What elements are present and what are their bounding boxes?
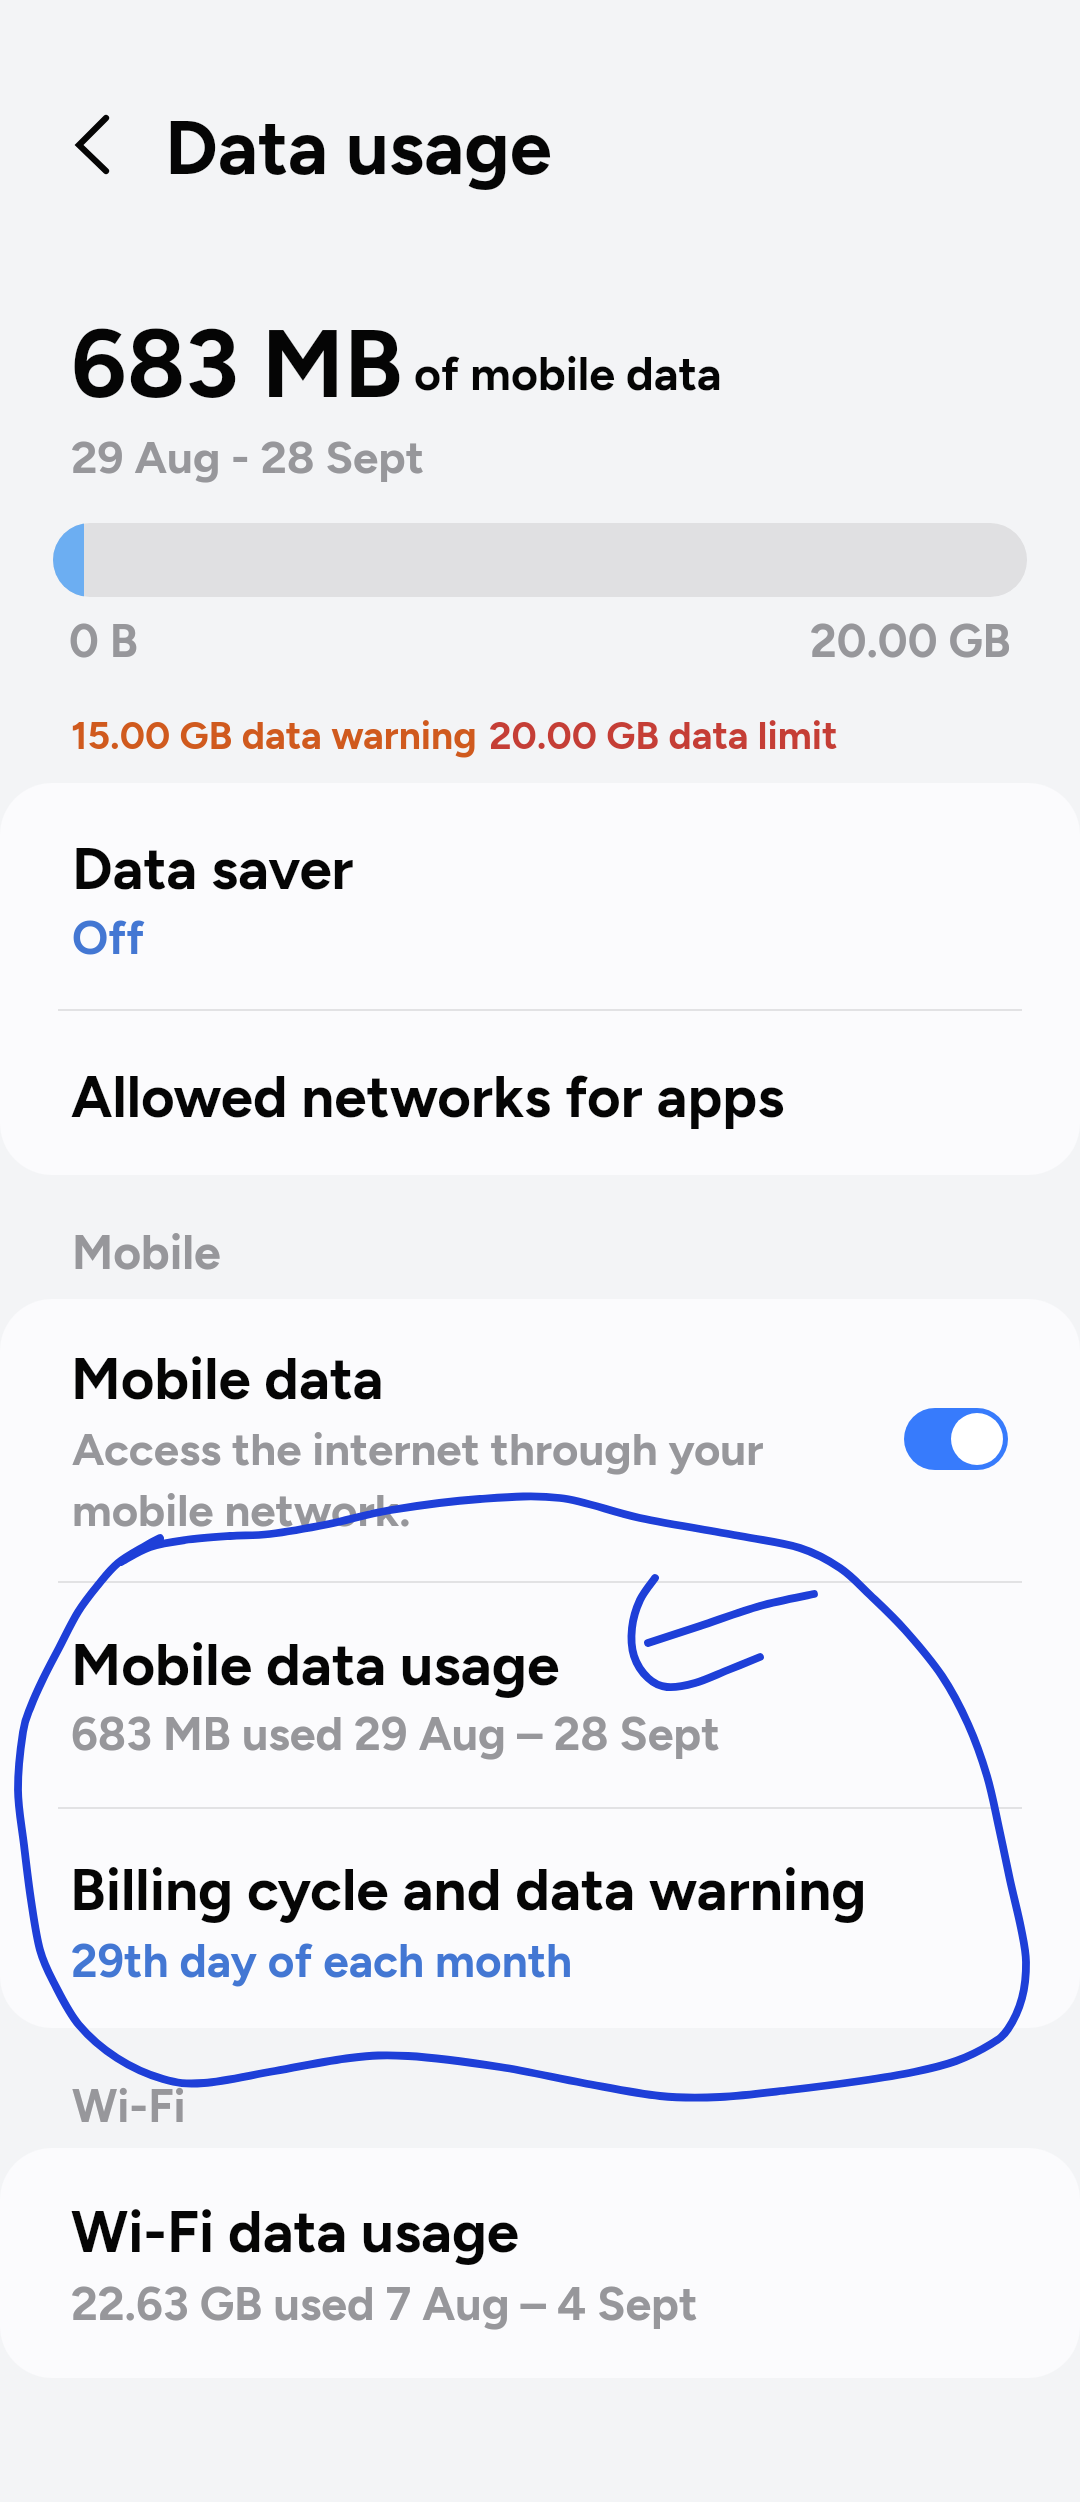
staticText: Access the internet through your mobile … bbox=[72, 1422, 764, 1537]
button[interactable]: Mobile data usage bbox=[0, 1583, 1080, 1806]
staticText: Data saver bbox=[72, 834, 354, 904]
staticText: Off bbox=[72, 910, 145, 965]
staticText: 20.00 GB bbox=[810, 613, 1011, 668]
staticText: of mobile data bbox=[414, 346, 722, 402]
staticText: 20.00 GB data limit bbox=[489, 712, 838, 759]
button[interactable]: Wi-Fi data usage bbox=[0, 2148, 1080, 2378]
staticText: 22.63 GB used 7 Aug – 4 Sept bbox=[71, 2276, 698, 2332]
staticText: Mobile data usage bbox=[71, 1629, 560, 1699]
staticText: Wi-Fi data usage bbox=[71, 2197, 519, 2267]
staticText: 683 MB bbox=[71, 306, 403, 421]
button[interactable]: Allowed networks for apps bbox=[0, 1011, 1080, 1175]
button[interactable]: Data saver bbox=[0, 783, 1080, 1009]
staticText: 0 B bbox=[69, 613, 138, 668]
staticText: Billing cycle and data warning bbox=[70, 1855, 867, 1925]
staticText: Wi-Fi bbox=[72, 2078, 186, 2133]
staticText: 29th day of each month bbox=[71, 1933, 573, 1988]
button[interactable]: Billing cycle and data warning bbox=[0, 1809, 1080, 2028]
staticText: 683 MB used 29 Aug – 28 Sept bbox=[71, 1706, 720, 1762]
button[interactable]: Mobile data bbox=[0, 1299, 1080, 1580]
staticText: Mobile data bbox=[71, 1344, 384, 1414]
button[interactable]: Mobile data, on bbox=[904, 1408, 1008, 1470]
staticText: Data usage bbox=[165, 102, 552, 193]
staticText: Mobile bbox=[72, 1223, 221, 1281]
button[interactable]: Back bbox=[44, 96, 142, 194]
staticText: 15.00 GB data warning bbox=[71, 712, 477, 759]
staticText: 29 Aug - 28 Sept bbox=[71, 430, 424, 485]
staticText: Allowed networks for apps bbox=[71, 1062, 785, 1132]
